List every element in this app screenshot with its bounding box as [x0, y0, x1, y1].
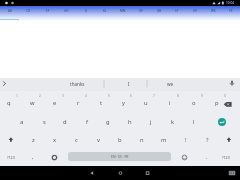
staticText: 2: [39, 94, 41, 98]
button[interactable]: [174, 148, 195, 167]
staticText: ?: [206, 136, 209, 144]
button[interactable]: [218, 130, 240, 149]
button[interactable]: j: [140, 112, 162, 131]
button[interactable]: we: [148, 77, 192, 90]
staticText: ST: [175, 9, 179, 13]
staticText: 7: [153, 94, 155, 98]
button[interactable]: [224, 166, 240, 180]
button[interactable]: g: [97, 112, 119, 131]
button[interactable]: KL: [95, 7, 114, 15]
staticText: !: [185, 136, 187, 144]
button[interactable]: v: [87, 130, 109, 149]
staticText: 1: [16, 94, 18, 98]
button[interactable]: q: [0, 93, 20, 112]
staticText: CD: [26, 9, 31, 13]
button[interactable]: [84, 166, 99, 180]
staticText: k: [171, 118, 175, 126]
staticText: b: [118, 136, 122, 144]
button[interactable]: EN · ES · FR: [68, 152, 171, 161]
button[interactable]: [44, 148, 65, 167]
staticText: 6: [130, 94, 132, 98]
staticText: .: [206, 153, 208, 161]
staticText: w: [30, 99, 35, 107]
staticText: 5: [108, 94, 110, 98]
staticText: we: [167, 81, 174, 87]
button[interactable]: f: [76, 112, 98, 131]
staticText: v: [97, 136, 100, 144]
button[interactable]: EF: [38, 7, 57, 15]
button[interactable]: p: [206, 93, 228, 112]
button[interactable]: [218, 118, 226, 126]
staticText: 3: [62, 94, 64, 98]
button[interactable]: ST: [168, 7, 186, 15]
staticText: IJ: [85, 9, 87, 13]
staticText: f: [86, 118, 88, 126]
staticText: j: [150, 118, 152, 126]
button[interactable]: I: [109, 77, 149, 90]
button[interactable]: WX: [204, 7, 222, 15]
button[interactable]: MN: [114, 7, 132, 15]
button[interactable]: a: [11, 112, 33, 131]
staticText: e: [53, 99, 57, 107]
button[interactable]: QR: [150, 7, 168, 15]
button[interactable]: YZ: [222, 7, 240, 15]
staticText: ?123: [222, 155, 230, 160]
button[interactable]: k: [162, 112, 184, 131]
button[interactable]: e: [44, 93, 66, 112]
button[interactable]: b: [109, 130, 131, 149]
button[interactable]: l: [183, 112, 205, 131]
staticText: GH: [64, 9, 69, 13]
button[interactable]: c: [65, 130, 87, 149]
staticText: OP: [139, 9, 144, 13]
staticText: UV: [193, 9, 197, 13]
button[interactable]: UV: [186, 7, 204, 15]
button[interactable]: ?123: [215, 148, 237, 167]
staticText: a: [20, 118, 24, 126]
staticText: MN: [120, 9, 126, 13]
staticText: ?123: [7, 155, 15, 160]
button[interactable]: CD: [19, 7, 38, 15]
button[interactable]: u: [135, 93, 157, 112]
staticText: o: [192, 99, 196, 107]
button[interactable]: y: [112, 93, 134, 112]
staticText: d: [63, 118, 67, 126]
button[interactable]: s: [33, 112, 55, 131]
staticText: 9: [201, 94, 203, 98]
button[interactable]: i: [159, 93, 181, 112]
button[interactable]: ,: [22, 147, 44, 166]
button[interactable]: d: [54, 112, 76, 131]
staticText: I: [128, 81, 130, 87]
button[interactable]: r: [67, 93, 89, 112]
button[interactable]: m: [153, 130, 175, 149]
button[interactable]: [217, 94, 239, 113]
staticText: l: [193, 118, 195, 126]
button[interactable]: [140, 166, 155, 180]
button[interactable]: GH: [57, 7, 76, 15]
button[interactable]: [0, 130, 22, 149]
button[interactable]: thanks: [52, 77, 102, 90]
button[interactable]: OP: [132, 7, 150, 15]
staticText: ,: [32, 153, 34, 161]
staticText: AB: [8, 9, 12, 13]
staticText: p: [215, 99, 219, 107]
button[interactable]: o: [183, 93, 205, 112]
button[interactable]: x: [44, 130, 66, 149]
button[interactable]: ?123: [0, 148, 22, 167]
button[interactable]: n: [131, 130, 153, 149]
button[interactable]: t: [90, 93, 112, 112]
staticText: t: [100, 99, 103, 107]
button[interactable]: ?: [196, 130, 218, 149]
button[interactable]: !: [175, 130, 197, 149]
button[interactable]: AB: [0, 7, 19, 15]
button[interactable]: IJ: [76, 7, 95, 15]
button[interactable]: z: [22, 130, 44, 149]
button[interactable]: w: [21, 93, 43, 112]
staticText: EF: [46, 9, 50, 13]
button[interactable]: [113, 166, 128, 180]
staticText: 4: [85, 94, 87, 98]
staticText: g: [106, 118, 110, 126]
button[interactable]: h: [119, 112, 141, 131]
staticText: c: [75, 136, 78, 144]
staticText: z: [32, 136, 35, 144]
